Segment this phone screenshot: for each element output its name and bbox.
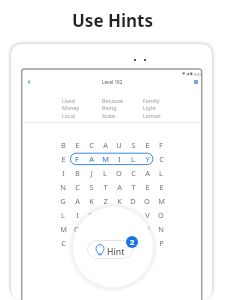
staticText: P [159,238,164,248]
staticText: A [89,154,94,164]
staticText: A [103,140,108,150]
staticText: M [60,224,67,234]
staticText: C [131,168,136,178]
staticText: J [90,168,93,178]
staticText: E [61,154,66,164]
staticText: O [74,224,80,234]
staticText: A [75,196,80,206]
staticText: M [158,196,165,206]
staticText: I [76,210,79,220]
staticText: E [145,182,150,192]
staticText: L [103,168,107,178]
staticText: O [144,196,150,206]
staticText: L [159,168,163,178]
staticText: Because [102,97,124,104]
staticText: K [117,196,122,206]
staticText: K [89,196,94,206]
staticText: B [75,168,80,178]
button[interactable]: Back [22,75,35,88]
staticText: Light [143,104,156,111]
staticText: C [89,140,94,150]
staticText: C [159,154,164,164]
staticText: U [116,140,122,150]
staticText: V [117,238,122,248]
staticText: F [159,140,163,150]
staticText: Hint [107,246,125,258]
staticText: Being [102,104,117,111]
staticText: S [131,140,136,150]
staticText: O [144,224,150,234]
staticText: B [61,140,66,150]
staticText: T [89,238,94,248]
staticText: E [159,182,164,192]
staticText: D [130,196,136,206]
staticText: N [158,224,164,234]
staticText: A [145,168,150,178]
staticText: Level 102 [102,79,123,85]
button[interactable]: Hint [87,240,133,259]
staticText: G [60,196,66,206]
staticText: Lemon [143,112,161,119]
staticText: 2 [130,237,135,247]
staticText: N [60,182,66,192]
staticText: M [102,154,109,164]
button[interactable]: More options [189,75,202,88]
staticText: C [61,238,66,248]
staticText: O [116,168,122,178]
staticText: F [75,154,79,164]
staticText: S [89,182,94,192]
staticText: I [62,168,65,178]
staticText: N [102,238,108,248]
staticText: E [145,140,150,150]
staticText: Used [62,97,75,104]
staticText: Family [143,97,160,104]
staticText: Use Hints [72,9,154,32]
staticText: O [158,210,164,220]
staticText: A [117,182,122,192]
staticText: E [75,140,80,150]
staticText: T [103,182,108,192]
staticText: Local [62,112,76,119]
staticText: Q [130,238,136,248]
staticText: State [102,112,115,119]
staticText: T [131,182,136,192]
staticText: Z [103,196,108,206]
staticText: L [131,154,135,164]
staticText: Money [62,104,80,111]
staticText: V [145,210,150,220]
staticText: Y [145,154,150,164]
staticText: G [88,210,94,220]
staticText: I [132,210,135,220]
staticText: L [61,210,65,220]
staticText: 9:41 [194,72,202,76]
staticText: C [75,182,80,192]
staticText: I [118,154,121,164]
